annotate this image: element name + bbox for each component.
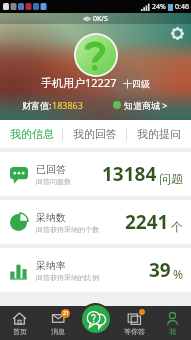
button[interactable]: 采纳率 bbox=[0, 248, 191, 292]
button[interactable]: Ask a question bbox=[82, 305, 110, 333]
button[interactable]: 21 bbox=[39, 306, 77, 340]
button[interactable]: 知道商城 > bbox=[113, 99, 168, 111]
staticText: 十四级 bbox=[123, 78, 150, 89]
staticText: 0:46 bbox=[175, 2, 189, 12]
staticText: 个 bbox=[171, 219, 183, 234]
staticText: 消息 bbox=[51, 327, 65, 336]
staticText: 回答获得采纳的个数 bbox=[36, 225, 99, 234]
staticText: 知道商城 > bbox=[124, 99, 168, 111]
button[interactable]: 已回答 bbox=[0, 152, 191, 196]
staticText: 183863 bbox=[52, 99, 83, 111]
button[interactable]: 采纳数 bbox=[0, 200, 191, 244]
button[interactable]: Profile avatar bbox=[74, 33, 118, 77]
button[interactable]: 我的信息 bbox=[0, 120, 63, 148]
staticText: 2241 bbox=[125, 209, 169, 235]
staticText: 我 bbox=[169, 327, 176, 336]
staticText: 0K/S bbox=[93, 14, 108, 24]
button[interactable]: Settings bbox=[171, 27, 184, 40]
staticText: 已回答 bbox=[36, 163, 66, 176]
button[interactable]: 等你答 bbox=[115, 306, 153, 340]
staticText: 我的提问 bbox=[137, 127, 181, 141]
staticText: 回答获得采纳的比例 bbox=[36, 273, 99, 282]
button[interactable]: 我的回答 bbox=[63, 120, 127, 148]
staticText: 手机用户12227 bbox=[41, 75, 117, 90]
staticText: 财富值: bbox=[22, 99, 52, 111]
staticText: 我的回答 bbox=[73, 127, 117, 141]
staticText: 回答问题数 bbox=[36, 177, 71, 186]
staticText: 39 bbox=[149, 257, 171, 283]
staticText: % bbox=[173, 266, 183, 282]
staticText: 13184 bbox=[102, 161, 157, 187]
staticText: 首页 bbox=[13, 327, 27, 336]
staticText: 问题 bbox=[159, 171, 183, 186]
staticText: 等你答 bbox=[124, 327, 145, 336]
staticText: 我的信息 bbox=[10, 127, 54, 141]
button[interactable]: 我的提问 bbox=[127, 120, 191, 148]
staticText: 采纳率 bbox=[36, 259, 66, 272]
staticText: 采纳数 bbox=[36, 211, 66, 224]
button[interactable]: 首页 bbox=[0, 306, 39, 340]
button[interactable]: 我 bbox=[153, 306, 191, 340]
staticText: 21 bbox=[63, 310, 69, 317]
staticText: 24% bbox=[152, 2, 166, 12]
